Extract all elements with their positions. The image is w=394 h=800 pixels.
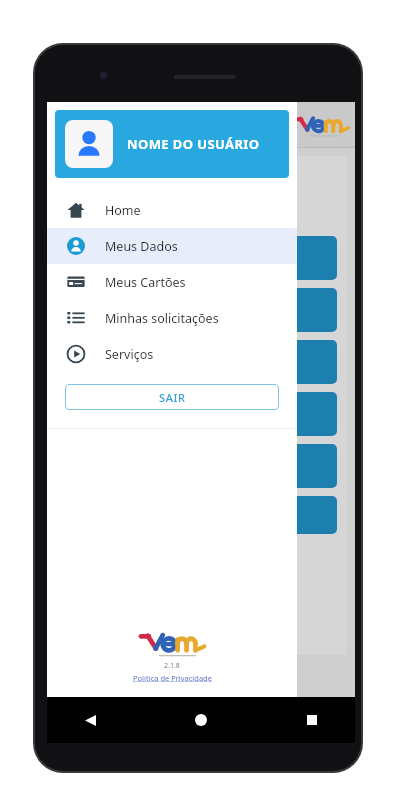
button[interactable]: Home [184,703,218,737]
staticText: Cartão Eletrônico [65,190,163,206]
staticText: NOME DO USUÁRIO [127,135,260,153]
staticText: Política de Privacidade [133,673,212,683]
staticText: Serviços [105,346,154,363]
button[interactable]: Recent apps [295,703,329,737]
button[interactable]: Meus Dados [47,228,297,264]
button[interactable]: Meus Cartões [47,264,297,300]
button[interactable]: Home [47,192,297,228]
button[interactable] [65,288,337,332]
staticText: Meus Cartões [105,274,186,291]
staticText: Minhas solicitações [105,310,219,327]
staticText: 2.1.8 [164,661,180,671]
button[interactable]: Back [73,703,107,737]
button[interactable]: NOME DO USUÁRIO [55,110,289,178]
button[interactable]: Meus Cartões [65,496,337,534]
button[interactable]: Serviços [47,336,297,372]
staticText: SAIR [159,390,186,405]
button[interactable]: SAIR [65,384,279,410]
button[interactable] [65,444,337,488]
staticText: Home [105,202,141,219]
button[interactable] [65,236,337,280]
button[interactable] [65,392,337,436]
button[interactable]: Minhas solicitações [47,300,297,336]
button[interactable]: Política de Privacidade [133,673,212,683]
staticText: Meus Dados [105,238,178,255]
button[interactable] [65,340,337,384]
